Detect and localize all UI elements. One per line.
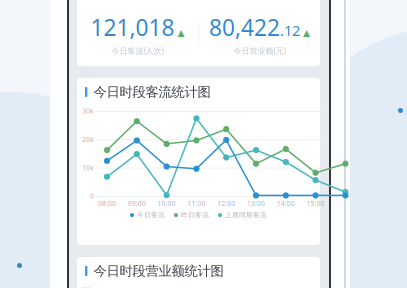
staticText: 10:00 [158,199,176,208]
staticText: 今日营业额(元) [233,45,285,56]
staticText: 今日客流 [137,211,165,219]
staticText: ▲ [174,28,184,38]
staticText: 80,422 [209,12,280,42]
staticText: 30k [82,107,94,115]
staticText: 121,018 [90,12,174,42]
staticText: 20k [82,135,94,144]
staticText: 14:00 [277,199,295,208]
staticText: 11:00 [187,199,205,208]
staticText: 0 [90,192,94,200]
staticText: 09:00 [128,199,146,208]
staticText: 上周同期客流 [225,211,267,219]
staticText: 今日时段客流统计图 [93,84,210,100]
staticText: 30k [82,286,94,288]
staticText: 08:00 [98,199,116,208]
staticText: 12:00 [217,199,235,208]
staticText: 昨日客流 [181,211,209,219]
staticText: 15:00 [307,199,325,208]
staticText: 今日客流(人次) [111,45,163,56]
staticText: 13:00 [247,199,265,208]
staticText: 10k [82,163,94,172]
staticText: .12 [280,21,300,40]
staticText: ▲ [300,28,310,38]
staticText: 今日时段营业额统计图 [93,263,223,279]
